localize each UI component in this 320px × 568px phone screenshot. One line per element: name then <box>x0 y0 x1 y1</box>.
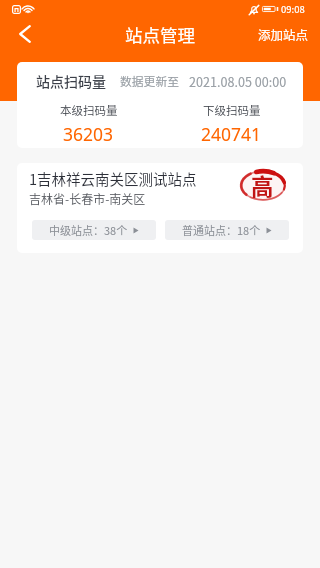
staticText: 站点扫码量 <box>36 71 106 91</box>
button[interactable]: 中级站点：38个 <box>32 220 156 240</box>
button[interactable]: Back <box>2 11 47 56</box>
staticText: 下级扫码量 <box>203 102 261 119</box>
button[interactable]: 普通站点：18个 <box>165 220 289 240</box>
staticText: 1吉林祥云南关区测试站点 <box>29 168 197 189</box>
staticText: 本级扫码量 <box>60 102 118 119</box>
staticText: 高 <box>251 169 274 202</box>
staticText: 09:08 <box>281 2 305 16</box>
staticText: 数据更新至 <box>120 72 179 89</box>
staticText: 36203 <box>63 122 114 146</box>
staticText: 240741 <box>201 122 262 146</box>
button[interactable]: 1吉林祥云南关区测试站点 <box>17 163 303 253</box>
staticText: 2021.08.05 00:00 <box>189 72 287 90</box>
staticText: 添加站点 <box>258 25 309 43</box>
staticText: 站点管理 <box>0 22 320 47</box>
button[interactable]: 添加站点 <box>252 20 315 48</box>
staticText: 普通站点：18个 <box>182 222 261 238</box>
staticText: 中级站点：38个 <box>49 222 128 238</box>
staticText: 吉林省-长春市-南关区 <box>29 190 146 207</box>
